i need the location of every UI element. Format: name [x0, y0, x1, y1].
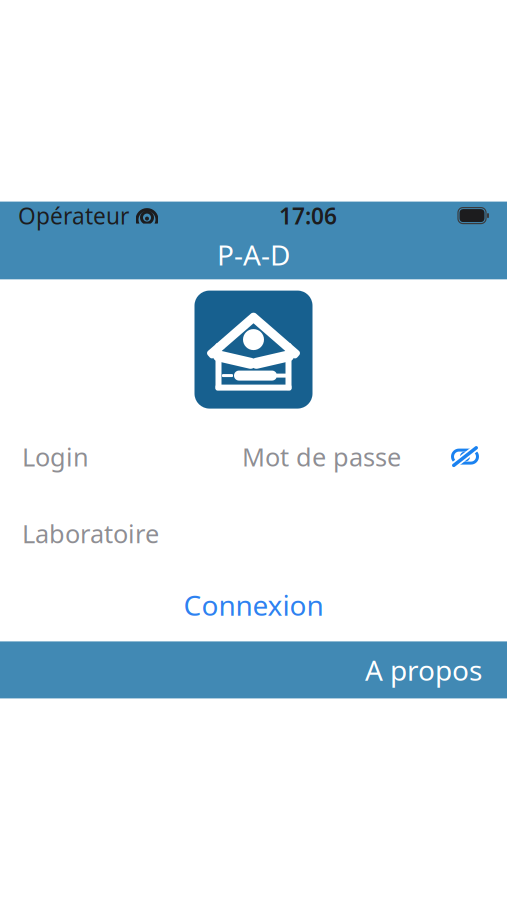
staticText: 17:06 [279, 200, 337, 231]
staticText: P-A-D [217, 236, 290, 273]
button[interactable]: Connexion [0, 576, 507, 633]
staticText: Mot de passe [242, 440, 401, 473]
staticText: Login [22, 440, 89, 473]
staticText: Opérateur [18, 200, 129, 231]
button[interactable]: Afficher le mot de passe [445, 440, 485, 474]
button[interactable]: A propos [0, 641, 507, 698]
staticText: A propos [365, 651, 482, 688]
staticText: Laboratoire [22, 517, 159, 550]
staticText: Connexion [183, 586, 323, 623]
